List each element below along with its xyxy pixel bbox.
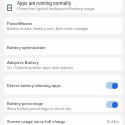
staticText: Phone has typical background battery usa… bbox=[17, 6, 95, 11]
button[interactable]: Battery percentage bbox=[4, 98, 122, 112]
button[interactable]: Apps are running normally bbox=[4, 0, 122, 13]
other: Battery bbox=[7, 4, 12, 11]
staticText: Apps are running normally bbox=[17, 1, 71, 6]
button[interactable]: Toggle on bbox=[106, 101, 118, 108]
staticText: Battery percentage bbox=[7, 101, 44, 106]
button[interactable]: Detect battery-draining apps bbox=[4, 75, 122, 95]
staticText: Show battery percentage in status bar bbox=[7, 106, 72, 110]
staticText: PowerMaster bbox=[7, 21, 33, 26]
staticText: Detect battery-draining apps bbox=[7, 83, 62, 88]
staticText: Battery modes, Battery care, Auto-start … bbox=[7, 26, 89, 30]
staticText: Adaptive Battery bbox=[7, 60, 39, 65]
staticText: Battery optimization bbox=[7, 45, 46, 50]
button[interactable]: Screen usage since full charge bbox=[4, 115, 122, 125]
button[interactable]: Battery optimization bbox=[4, 39, 122, 55]
button[interactable]: PowerMaster bbox=[4, 17, 122, 34]
staticText: On / Detecting when apps drain battery bbox=[7, 65, 73, 69]
staticText: Screen usage since full charge bbox=[7, 119, 66, 124]
button[interactable]: Toggle on bbox=[106, 82, 118, 89]
button[interactable]: Adaptive Battery bbox=[4, 58, 122, 71]
staticText: 1h 54m bbox=[106, 119, 119, 123]
